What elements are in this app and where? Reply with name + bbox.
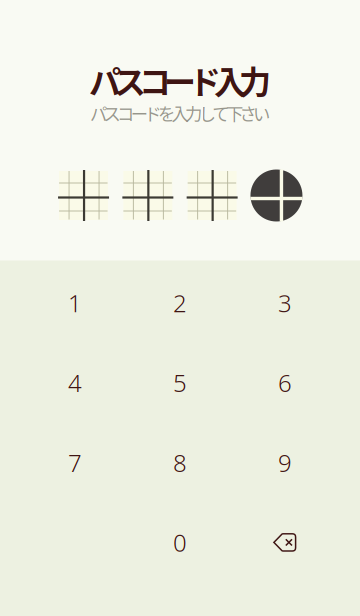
button[interactable]: 2 [127, 264, 232, 342]
button[interactable]: 1 [22, 264, 127, 342]
staticText: 0 [173, 526, 187, 559]
staticText: 3 [278, 287, 292, 319]
button[interactable]: 5 [127, 344, 232, 422]
button[interactable]: 8 [127, 424, 232, 502]
staticText: パスコード入力 [89, 57, 271, 103]
button[interactable]: 7 [22, 424, 127, 502]
staticText: 1 [68, 287, 82, 319]
staticText: 2 [173, 287, 187, 319]
staticText: 4 [68, 366, 82, 399]
button[interactable]: 9 [232, 424, 337, 502]
staticText: 6 [278, 366, 292, 399]
button[interactable]: 6 [232, 344, 337, 422]
button[interactable]: 3 [232, 264, 337, 342]
staticText: 9 [278, 446, 292, 479]
button[interactable]: 4 [22, 344, 127, 422]
staticText: 8 [173, 446, 187, 479]
staticText: 5 [173, 366, 187, 399]
button[interactable]: Delete [232, 503, 337, 581]
button[interactable]: 0 [127, 503, 232, 581]
staticText: パスコードを入力して下さい [90, 100, 270, 126]
staticText: 7 [68, 446, 82, 479]
